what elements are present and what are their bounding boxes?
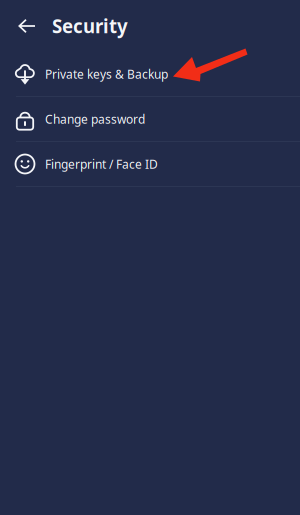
staticText: Change password (45, 111, 145, 127)
staticText: Security (52, 14, 128, 38)
button[interactable]: Back (0, 6, 39, 46)
button[interactable]: Fingerprint / Face ID (0, 142, 300, 186)
button[interactable]: Change password (0, 97, 300, 141)
button[interactable]: Private keys & Backup (0, 52, 300, 96)
staticText: Fingerprint / Face ID (45, 156, 158, 172)
staticText: Private keys & Backup (45, 66, 168, 82)
